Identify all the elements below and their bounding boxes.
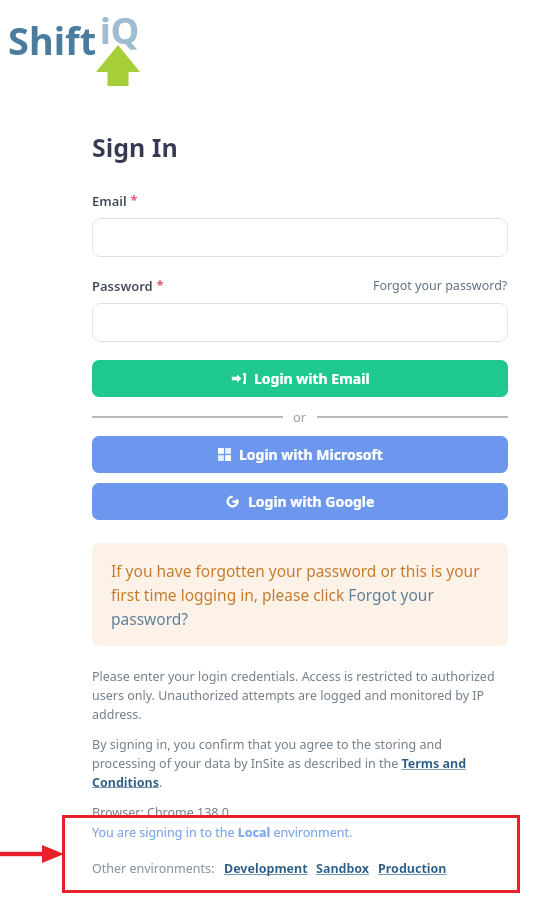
staticText: Shift — [8, 14, 97, 66]
staticText: Sign In — [92, 130, 178, 164]
button[interactable]: Sandbox — [316, 860, 370, 877]
button[interactable] — [92, 303, 508, 342]
staticText: Development — [224, 860, 308, 877]
button[interactable]: Login with Microsoft — [92, 436, 508, 473]
staticText: Email — [92, 192, 127, 210]
button[interactable] — [92, 218, 508, 257]
staticText: Password — [92, 277, 153, 295]
staticText: Browser: Chrome 138.0 — [92, 804, 230, 821]
button[interactable]: Forgot your password? — [373, 277, 508, 295]
staticText: If you have forgotten your password or t… — [111, 560, 489, 629]
staticText: * — [127, 191, 138, 209]
staticText: Production — [378, 860, 447, 877]
staticText: By signing in, you confirm that you agre… — [92, 736, 508, 790]
staticText: Login with Microsoft — [239, 445, 383, 464]
button[interactable]: Production — [378, 860, 447, 877]
staticText: Please enter your login credentials. Acc… — [92, 668, 508, 722]
staticText: You are signing in to the Local environm… — [92, 824, 353, 841]
staticText: * — [153, 276, 164, 294]
button[interactable]: Development — [224, 860, 308, 877]
staticText: Sandbox — [316, 860, 370, 877]
staticText: Login with Email — [254, 369, 370, 388]
button[interactable]: Login with Email — [92, 360, 508, 397]
staticText: Login with Google — [248, 492, 375, 511]
staticText: Other environments: — [92, 860, 215, 877]
staticText: iQ — [100, 6, 140, 55]
staticText: or — [293, 408, 307, 426]
button[interactable]: Login with Google — [92, 483, 508, 520]
staticText: Forgot your password? — [373, 277, 508, 294]
